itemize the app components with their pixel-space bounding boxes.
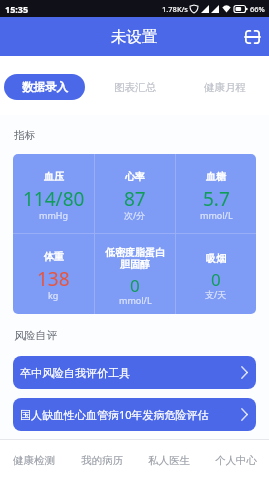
staticText: 指标 bbox=[14, 129, 36, 143]
staticText: kg bbox=[48, 289, 59, 301]
button[interactable]: 血压 bbox=[13, 154, 94, 233]
staticText: 个人中心 bbox=[215, 454, 257, 467]
button[interactable]: 体重 bbox=[13, 234, 94, 314]
staticText: mmol/L bbox=[119, 294, 152, 306]
button[interactable]: 血糖 bbox=[176, 154, 256, 233]
button[interactable]: 健康检测 bbox=[0, 440, 68, 480]
button[interactable]: 心率 bbox=[95, 154, 175, 233]
button[interactable]: 图表汇总 bbox=[94, 74, 175, 100]
button[interactable]: 个人中心 bbox=[202, 440, 269, 480]
button[interactable]: Scan bbox=[238, 23, 266, 51]
staticText: 血压 bbox=[44, 170, 64, 183]
staticText: 15:35 bbox=[5, 3, 29, 15]
staticText: 国人缺血性心血管病10年发病危险评估 bbox=[20, 407, 209, 422]
button[interactable]: 我的病历 bbox=[68, 440, 135, 480]
staticText: 健康检测 bbox=[13, 454, 55, 467]
button[interactable]: 数据录入 bbox=[4, 74, 85, 100]
staticText: 吸烟 bbox=[206, 252, 226, 265]
button[interactable]: 健康月程 bbox=[184, 74, 265, 100]
staticText: 体重 bbox=[44, 250, 64, 263]
staticText: mmol/L bbox=[200, 209, 233, 221]
staticText: 血糖 bbox=[206, 170, 226, 183]
staticText: 0 bbox=[211, 268, 221, 291]
button[interactable]: 吸烟 bbox=[176, 234, 256, 314]
staticText: 数据录入 bbox=[22, 80, 68, 94]
button[interactable]: 卒中风险自我评价工具 bbox=[13, 356, 256, 389]
staticText: 1.78K/s bbox=[162, 4, 188, 14]
staticText: 0 bbox=[130, 274, 140, 297]
staticText: 风险自评 bbox=[14, 329, 58, 343]
staticText: 66% bbox=[250, 4, 265, 14]
button[interactable]: 私人医生 bbox=[135, 440, 202, 480]
staticText: mmHg bbox=[39, 209, 69, 221]
staticText: 5.7 bbox=[203, 186, 230, 212]
staticText: 卒中风险自我评价工具 bbox=[20, 366, 130, 380]
staticText: 低密度脂蛋白 胆固醇 bbox=[105, 246, 165, 271]
staticText: 我的病历 bbox=[81, 454, 123, 467]
staticText: 健康月程 bbox=[204, 81, 246, 94]
staticText: 图表汇总 bbox=[114, 81, 156, 94]
staticText: 私人医生 bbox=[148, 454, 190, 467]
button[interactable]: 国人缺血性心血管病10年发病危险评估 bbox=[13, 398, 256, 431]
staticText: 未设置 bbox=[111, 27, 158, 47]
button[interactable]: 低密度脂蛋白 胆固醇 bbox=[95, 234, 175, 314]
staticText: 114/80 bbox=[23, 186, 85, 212]
staticText: 心率 bbox=[125, 170, 145, 183]
staticText: 138 bbox=[37, 266, 70, 292]
staticText: 支/天 bbox=[205, 288, 227, 300]
staticText: 次/分 bbox=[124, 209, 146, 221]
staticText: 87 bbox=[124, 186, 146, 212]
